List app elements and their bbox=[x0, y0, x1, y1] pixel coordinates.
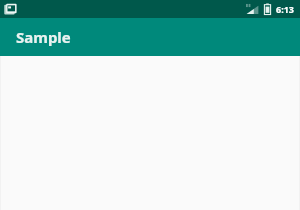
other: Battery bbox=[264, 3, 271, 15]
staticText: 6:13 bbox=[276, 3, 294, 15]
other: Image notification bbox=[4, 3, 17, 16]
button[interactable]: Sample bbox=[0, 18, 300, 56]
staticText: Sample bbox=[16, 27, 71, 47]
other: Mobile signal bbox=[246, 3, 259, 15]
